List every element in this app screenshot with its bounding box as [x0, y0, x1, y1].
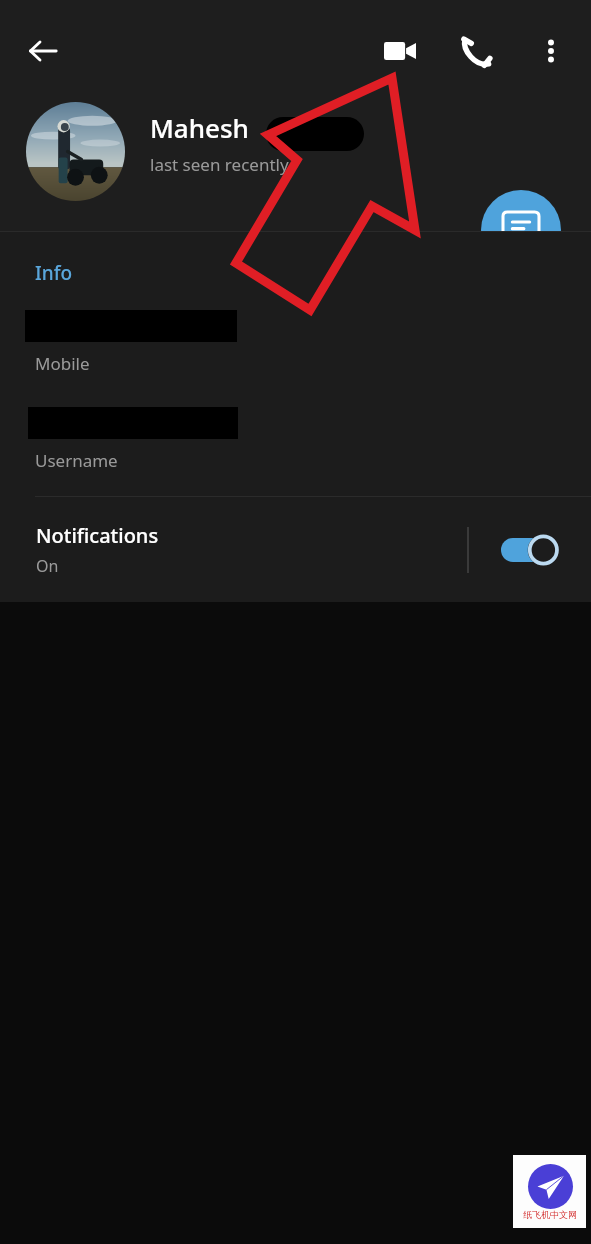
button[interactable]: Send message [481, 190, 561, 270]
staticText: last seen recently [150, 153, 289, 176]
button[interactable]: Username [0, 379, 591, 472]
staticText: On [36, 555, 59, 577]
button[interactable]: Call [448, 22, 506, 80]
staticText: Info [35, 260, 73, 286]
button[interactable]: Back [14, 22, 72, 80]
staticText: Mobile [35, 352, 90, 375]
button[interactable]: Notifications [0, 497, 591, 602]
staticText: Username [35, 449, 118, 472]
staticText: 纸飞机中文网 [523, 1209, 577, 1220]
button[interactable]: Notifications toggle [499, 530, 561, 570]
button[interactable]: Profile photo [26, 102, 125, 201]
button[interactable]: More options [522, 22, 580, 80]
button[interactable]: Mobile [0, 286, 591, 379]
button[interactable]: Video call [371, 22, 429, 80]
staticText: Mahesh [150, 110, 249, 145]
staticText: Notifications [36, 522, 159, 549]
